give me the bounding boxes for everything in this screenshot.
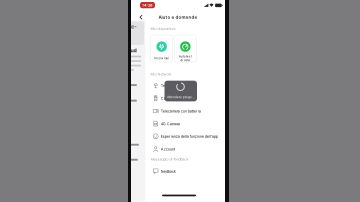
button[interactable]: Esperienza della funzione dell'app — [153, 130, 225, 143]
button[interactable]: Inizia Qui — [150, 35, 173, 62]
button[interactable]: Telecamera con batteria — [153, 105, 225, 117]
staticText: Esperienza della funzione dell'app — [161, 134, 218, 139]
staticText: 14:28 — [142, 3, 153, 7]
staticText: di rete — [180, 58, 190, 62]
button[interactable]: Campanello — [153, 92, 225, 105]
staticText: Attendere prego... — [167, 95, 195, 99]
staticText: Aiuto e domande — [158, 15, 197, 20]
staticText: Messaggio di feedback — [151, 157, 189, 161]
button[interactable]: Account — [153, 143, 225, 155]
staticText: feedback — [161, 169, 176, 174]
staticText: Inizia Qui — [154, 56, 169, 60]
staticText: Mio Network — [151, 72, 172, 76]
button[interactable]: 4G Camera — [153, 117, 225, 130]
staticText: Account — [161, 147, 175, 151]
staticText: Campanello — [161, 96, 181, 101]
staticText: codice promo — [120, 30, 131, 37]
button[interactable]: Autotest — [174, 35, 196, 62]
button[interactable]: Telecamera — [153, 79, 225, 92]
button[interactable]: feedback — [153, 165, 225, 177]
staticText: Cloud S — [122, 47, 136, 60]
staticText: 4G Camera — [161, 121, 180, 126]
staticText: Telecamera con batteria — [161, 109, 201, 113]
staticText: Voucher — [121, 23, 136, 36]
staticText: Telecamera — [161, 83, 180, 88]
staticText: Autotest — [179, 54, 192, 58]
staticText: Mio dispositivo — [151, 26, 176, 31]
button[interactable]: Back — [136, 12, 147, 23]
